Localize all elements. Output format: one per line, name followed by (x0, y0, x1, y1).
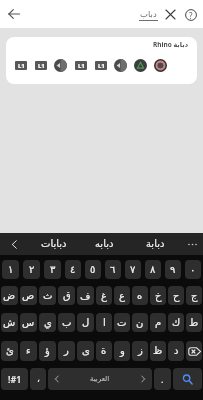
button[interactable]: ح (168, 286, 184, 305)
button[interactable]: ض (1, 286, 18, 305)
button[interactable]: م (150, 313, 166, 332)
button[interactable]: Sticker (14, 59, 27, 72)
button[interactable]: ء (20, 341, 37, 361)
staticText: غ (101, 290, 107, 302)
button[interactable]: خ (150, 286, 166, 305)
button[interactable]: !#1 (1, 368, 28, 390)
staticText: ف (80, 290, 91, 302)
staticText: ٧ (130, 264, 136, 276)
button[interactable]: Previous suggestions (0, 233, 28, 255)
staticText: L1 (98, 62, 105, 70)
staticText: ١ (8, 264, 14, 276)
button[interactable]: Help (181, 5, 201, 25)
button[interactable]: ص (20, 286, 37, 305)
staticText: ن (136, 317, 144, 329)
button[interactable]: Sticker (154, 59, 167, 72)
staticText: ض (3, 290, 16, 302)
button[interactable]: دبابة (130, 233, 181, 255)
button[interactable]: ب (58, 313, 75, 332)
button[interactable]: غ (96, 286, 112, 305)
button[interactable]: ى (77, 341, 94, 361)
staticText: ح (173, 290, 180, 302)
button[interactable]: ز (132, 341, 148, 361)
staticText: م (155, 317, 162, 329)
button[interactable]: ن (132, 313, 148, 332)
button[interactable]: Search (173, 368, 202, 390)
staticText: ش (3, 317, 16, 329)
staticText: ج (191, 290, 198, 302)
staticText: دبابه (95, 238, 114, 250)
button[interactable]: ك (168, 313, 184, 332)
staticText: L1 (18, 62, 25, 70)
button[interactable]: ت (114, 313, 130, 332)
staticText: د (174, 345, 179, 357)
button[interactable]: ؤ (39, 341, 56, 361)
button[interactable]: دباب (137, 6, 160, 24)
button[interactable]: Sticker (94, 59, 107, 72)
button[interactable]: ، (30, 368, 46, 390)
button[interactable]: ث (39, 286, 56, 305)
staticText: ص (22, 290, 35, 302)
staticText: ٢ (29, 264, 35, 276)
button[interactable]: ٧ (125, 260, 141, 279)
button[interactable]: ٩ (165, 260, 181, 279)
button[interactable]: ي (39, 313, 56, 332)
staticText: ، (37, 374, 40, 384)
staticText: ع (119, 290, 125, 302)
staticText: و (120, 345, 125, 357)
button[interactable]: دبابات (28, 233, 79, 255)
button[interactable]: ه (132, 286, 148, 305)
button[interactable]: More suggestions (181, 233, 203, 255)
button[interactable]: Back (3, 3, 25, 25)
button[interactable]: ٤ (65, 260, 81, 279)
staticText: ط (189, 317, 199, 329)
button[interactable]: ٣ (44, 260, 61, 279)
staticText: ٠ (190, 264, 196, 276)
staticText: ئ (6, 345, 14, 357)
staticText: ٣ (50, 264, 56, 276)
button[interactable]: ج (186, 286, 202, 305)
staticText: ا (103, 317, 106, 329)
button[interactable]: ق (58, 286, 75, 305)
staticText: خ (155, 290, 162, 302)
button[interactable]: دبابه (79, 233, 130, 255)
button[interactable]: Clear (160, 4, 181, 25)
button[interactable]: Sticker (114, 59, 127, 72)
button[interactable]: د (168, 341, 184, 361)
button[interactable]: ة (96, 341, 112, 361)
button[interactable]: Backspace (186, 341, 202, 361)
button[interactable]: ر (58, 341, 75, 361)
button[interactable]: ش (1, 313, 18, 332)
button[interactable]: ا (96, 313, 112, 332)
staticText: ز (138, 345, 143, 357)
button[interactable]: ٦ (105, 260, 121, 279)
button[interactable]: Sticker (34, 59, 47, 72)
button[interactable]: س (20, 313, 37, 332)
staticText: ? (189, 10, 193, 21)
staticText: س (22, 317, 35, 329)
button[interactable]: ع (114, 286, 130, 305)
staticText: ٥ (90, 264, 96, 276)
button[interactable]: ٠ (185, 260, 201, 279)
staticText: دباب (140, 9, 157, 19)
button[interactable]: ١ (2, 260, 19, 279)
button[interactable]: ٢ (23, 260, 40, 279)
button[interactable]: و (114, 341, 130, 361)
button[interactable]: العربية (48, 368, 152, 390)
staticText: ب (62, 317, 72, 329)
button[interactable]: ئ (1, 341, 18, 361)
staticText: ٨ (150, 264, 156, 276)
staticText: ه (137, 290, 143, 302)
button[interactable]: ل (77, 313, 94, 332)
button[interactable]: ط (186, 313, 202, 332)
button[interactable]: ظ (150, 341, 166, 361)
button[interactable]: ٨ (145, 260, 161, 279)
button[interactable]: Sticker (134, 59, 147, 72)
button[interactable]: Sticker (74, 59, 87, 72)
button[interactable]: Sticker (54, 59, 67, 72)
button[interactable]: ف (77, 286, 94, 305)
button[interactable]: . (154, 368, 171, 390)
staticText: ٦ (110, 264, 116, 276)
button[interactable]: ٥ (85, 260, 101, 279)
button[interactable]: Rhino دبابة (6, 37, 197, 84)
